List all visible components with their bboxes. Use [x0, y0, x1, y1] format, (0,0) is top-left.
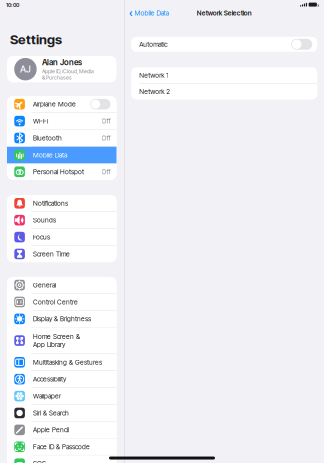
button[interactable]: ‹ [124, 3, 168, 23]
staticText: Settings [10, 31, 62, 47]
staticText: Display & Brightness [33, 315, 91, 323]
button[interactable]: Control Centre [7, 294, 116, 310]
staticText: AJ [20, 64, 31, 75]
button[interactable]: Network 1 [131, 67, 317, 83]
staticText: Off [101, 134, 110, 142]
button[interactable]: Personal Hotspot [7, 164, 116, 180]
staticText: Screen Time [33, 250, 70, 258]
button[interactable]: Network 2 [131, 84, 317, 99]
button[interactable]: Notifications [7, 195, 116, 211]
staticText: Face ID & Passcode [33, 443, 90, 451]
button[interactable]: Bluetooth [7, 130, 116, 146]
staticText: Mobile Data [33, 151, 67, 159]
button[interactable]: General [7, 277, 116, 293]
staticText: › [317, 2, 319, 8]
staticText: Home Screen & App Library [33, 333, 80, 348]
staticText: Wallpaper [33, 392, 61, 400]
staticText: Sounds [33, 216, 56, 224]
staticText: ‹ [129, 7, 133, 19]
button[interactable]: Automatic [131, 37, 317, 52]
staticText: Alan Jones [42, 58, 82, 67]
staticText: Siri & Search [33, 409, 69, 417]
button[interactable]: Airplane Mode [7, 96, 116, 112]
button[interactable]: Accessibility [7, 371, 116, 387]
staticText: SOS [33, 460, 46, 463]
staticText: Mobile Data [134, 9, 168, 17]
staticText: Apple Pencil [33, 426, 69, 434]
button[interactable]: Home Screen & App Library [7, 328, 116, 353]
staticText: Network 1 [139, 71, 168, 79]
staticText: Wi-Fi [33, 117, 48, 125]
staticText: Multitasking & Gestures [33, 358, 102, 366]
button[interactable]: Wallpaper [7, 388, 116, 404]
staticText: Notifications [33, 199, 68, 207]
staticText: Apple ID, iCloud, Media & Purchases [42, 68, 94, 81]
button[interactable]: Screen Time [7, 246, 116, 262]
staticText: Personal Hotspot [33, 168, 84, 176]
button[interactable]: Sounds [7, 212, 116, 228]
button[interactable]: Apple Pencil [7, 422, 116, 438]
staticText: Control Centre [33, 298, 78, 306]
button[interactable]: Focus [7, 229, 116, 245]
button[interactable]: Mobile Data [7, 147, 116, 164]
staticText: General [33, 281, 56, 289]
button[interactable]: AJ [7, 56, 116, 82]
staticText: Network Selection [197, 9, 252, 17]
staticText: Focus [33, 233, 50, 241]
staticText: Airplane Mode [33, 100, 76, 108]
staticText: Bluetooth [33, 134, 62, 142]
staticText: Off [101, 117, 110, 125]
button[interactable]: SOS [7, 455, 116, 463]
button[interactable]: Face ID & Passcode [7, 439, 116, 455]
staticText: Automatic [139, 40, 167, 48]
button[interactable]: Display & Brightness [7, 311, 116, 327]
button[interactable]: Wi-Fi [7, 113, 116, 129]
staticText: 10:00 [6, 2, 19, 8]
staticText: Accessibility [33, 375, 66, 383]
button[interactable]: Siri & Search [7, 405, 116, 421]
staticText: Off [101, 168, 110, 176]
button[interactable]: Multitasking & Gestures [7, 354, 116, 370]
staticText: Network 2 [139, 88, 170, 96]
